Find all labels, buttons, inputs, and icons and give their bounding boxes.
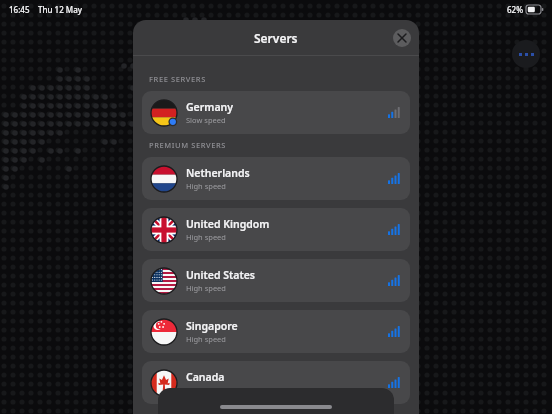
staticText: Servers <box>254 30 298 46</box>
button[interactable]: Canada <box>142 361 410 404</box>
staticText: High speed <box>186 232 226 242</box>
staticText: Canada <box>186 370 225 384</box>
button[interactable]: Netherlands <box>142 157 410 200</box>
button[interactable]: Germany <box>142 91 410 134</box>
staticText: PREMIUM SERVERS <box>149 140 227 150</box>
staticText: 62% <box>507 4 523 15</box>
button[interactable]: Close <box>393 29 411 47</box>
staticText: United States <box>186 268 255 282</box>
staticText: High speed <box>186 385 226 395</box>
staticText: United Kingdom <box>186 217 270 231</box>
button[interactable]: More options <box>512 40 540 68</box>
staticText: 16:45 <box>9 4 30 15</box>
staticText: FREE SERVERS <box>149 74 206 84</box>
staticText: High speed <box>186 334 226 344</box>
staticText: Netherlands <box>186 166 250 180</box>
button[interactable]: Singapore <box>142 310 410 353</box>
staticText: Thu 12 May <box>38 4 82 15</box>
staticText: Singapore <box>186 319 238 333</box>
staticText: High speed <box>186 283 226 293</box>
button[interactable]: United States <box>142 259 410 302</box>
button[interactable]: United Kingdom <box>142 208 410 251</box>
staticText: Slow speed <box>186 115 226 125</box>
staticText: Germany <box>186 100 233 114</box>
staticText: High speed <box>186 181 226 191</box>
